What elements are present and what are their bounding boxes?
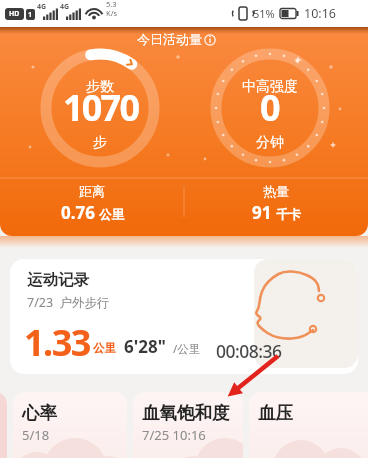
- staticText: 距离: [79, 183, 105, 199]
- staticText: 今日活动量: [137, 31, 202, 47]
- staticText: 51%: [253, 6, 275, 21]
- staticText: HD: [9, 9, 20, 19]
- staticText: 血氧饱和度: [142, 402, 230, 424]
- staticText: 中高强度: [242, 78, 298, 96]
- staticText: 1.33: [24, 318, 90, 367]
- staticText: 6'28": [124, 335, 166, 358]
- staticText: 公里: [93, 341, 116, 355]
- staticText: 1: [28, 10, 33, 20]
- staticText: 步: [93, 134, 107, 152]
- staticText: /公里: [173, 341, 201, 357]
- staticText: 0: [260, 83, 281, 132]
- staticText: 1070: [63, 83, 139, 132]
- staticText: 千卡: [276, 207, 301, 223]
- staticText: 热量: [263, 183, 289, 199]
- staticText: 5.3: [106, 0, 117, 9]
- button[interactable]: 今日活动量: [0, 27, 368, 236]
- staticText: 运动记录: [27, 270, 89, 290]
- button[interactable]: 血氧饱和度: [133, 392, 243, 458]
- staticText: 91: [252, 201, 272, 224]
- button[interactable]: 运动记录: [10, 259, 358, 374]
- staticText: 分钟: [256, 134, 284, 152]
- staticText: 血压: [258, 402, 293, 424]
- staticText: 4G: [37, 2, 47, 12]
- button[interactable]: 血压: [249, 392, 368, 458]
- staticText: 7/23 户外步行: [27, 294, 110, 311]
- staticText: 心率: [22, 402, 57, 424]
- staticText: 公里: [99, 207, 124, 223]
- staticText: 5/18: [22, 426, 50, 444]
- staticText: 步数: [86, 78, 114, 96]
- staticText: 7/25 10:16: [142, 426, 206, 444]
- button[interactable]: 心率: [13, 392, 127, 458]
- staticText: 00:08:36: [216, 339, 282, 363]
- staticText: 4G: [60, 2, 70, 12]
- staticText: K/s: [106, 8, 118, 18]
- staticText: 0.76: [61, 201, 95, 224]
- staticText: 10:16: [304, 5, 336, 22]
